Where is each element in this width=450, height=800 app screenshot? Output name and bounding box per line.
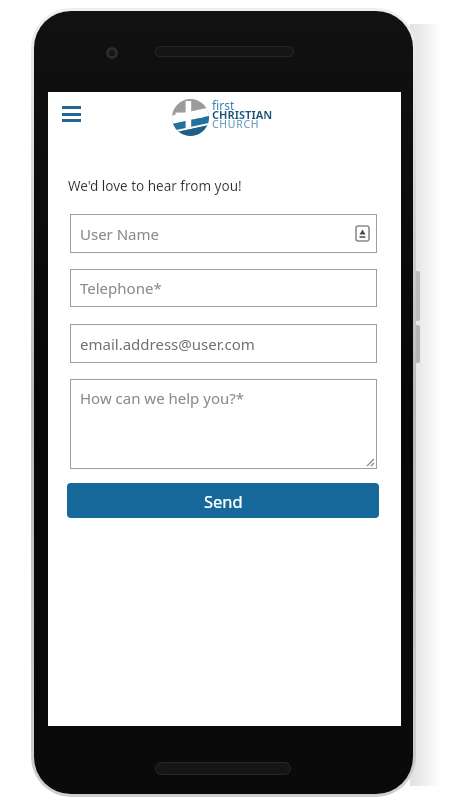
button[interactable]: Send bbox=[67, 483, 379, 518]
button[interactable]: How can we help you?* bbox=[70, 379, 377, 469]
staticText: We'd love to hear from you! bbox=[68, 177, 242, 195]
staticText: CHRISTIAN bbox=[212, 107, 273, 122]
staticText: Telephone* bbox=[80, 278, 162, 298]
button[interactable]: User Name bbox=[70, 214, 377, 253]
button[interactable]: Telephone* bbox=[70, 269, 377, 307]
button[interactable] bbox=[58, 103, 82, 127]
staticText: User Name bbox=[80, 224, 160, 244]
staticText: CHURCH bbox=[212, 117, 260, 131]
staticText: How can we help you?* bbox=[80, 388, 245, 408]
button[interactable]: email.address@user.com bbox=[70, 324, 377, 363]
staticText: first bbox=[212, 97, 235, 113]
staticText: Send bbox=[204, 490, 243, 512]
staticText: email.address@user.com bbox=[80, 334, 255, 354]
